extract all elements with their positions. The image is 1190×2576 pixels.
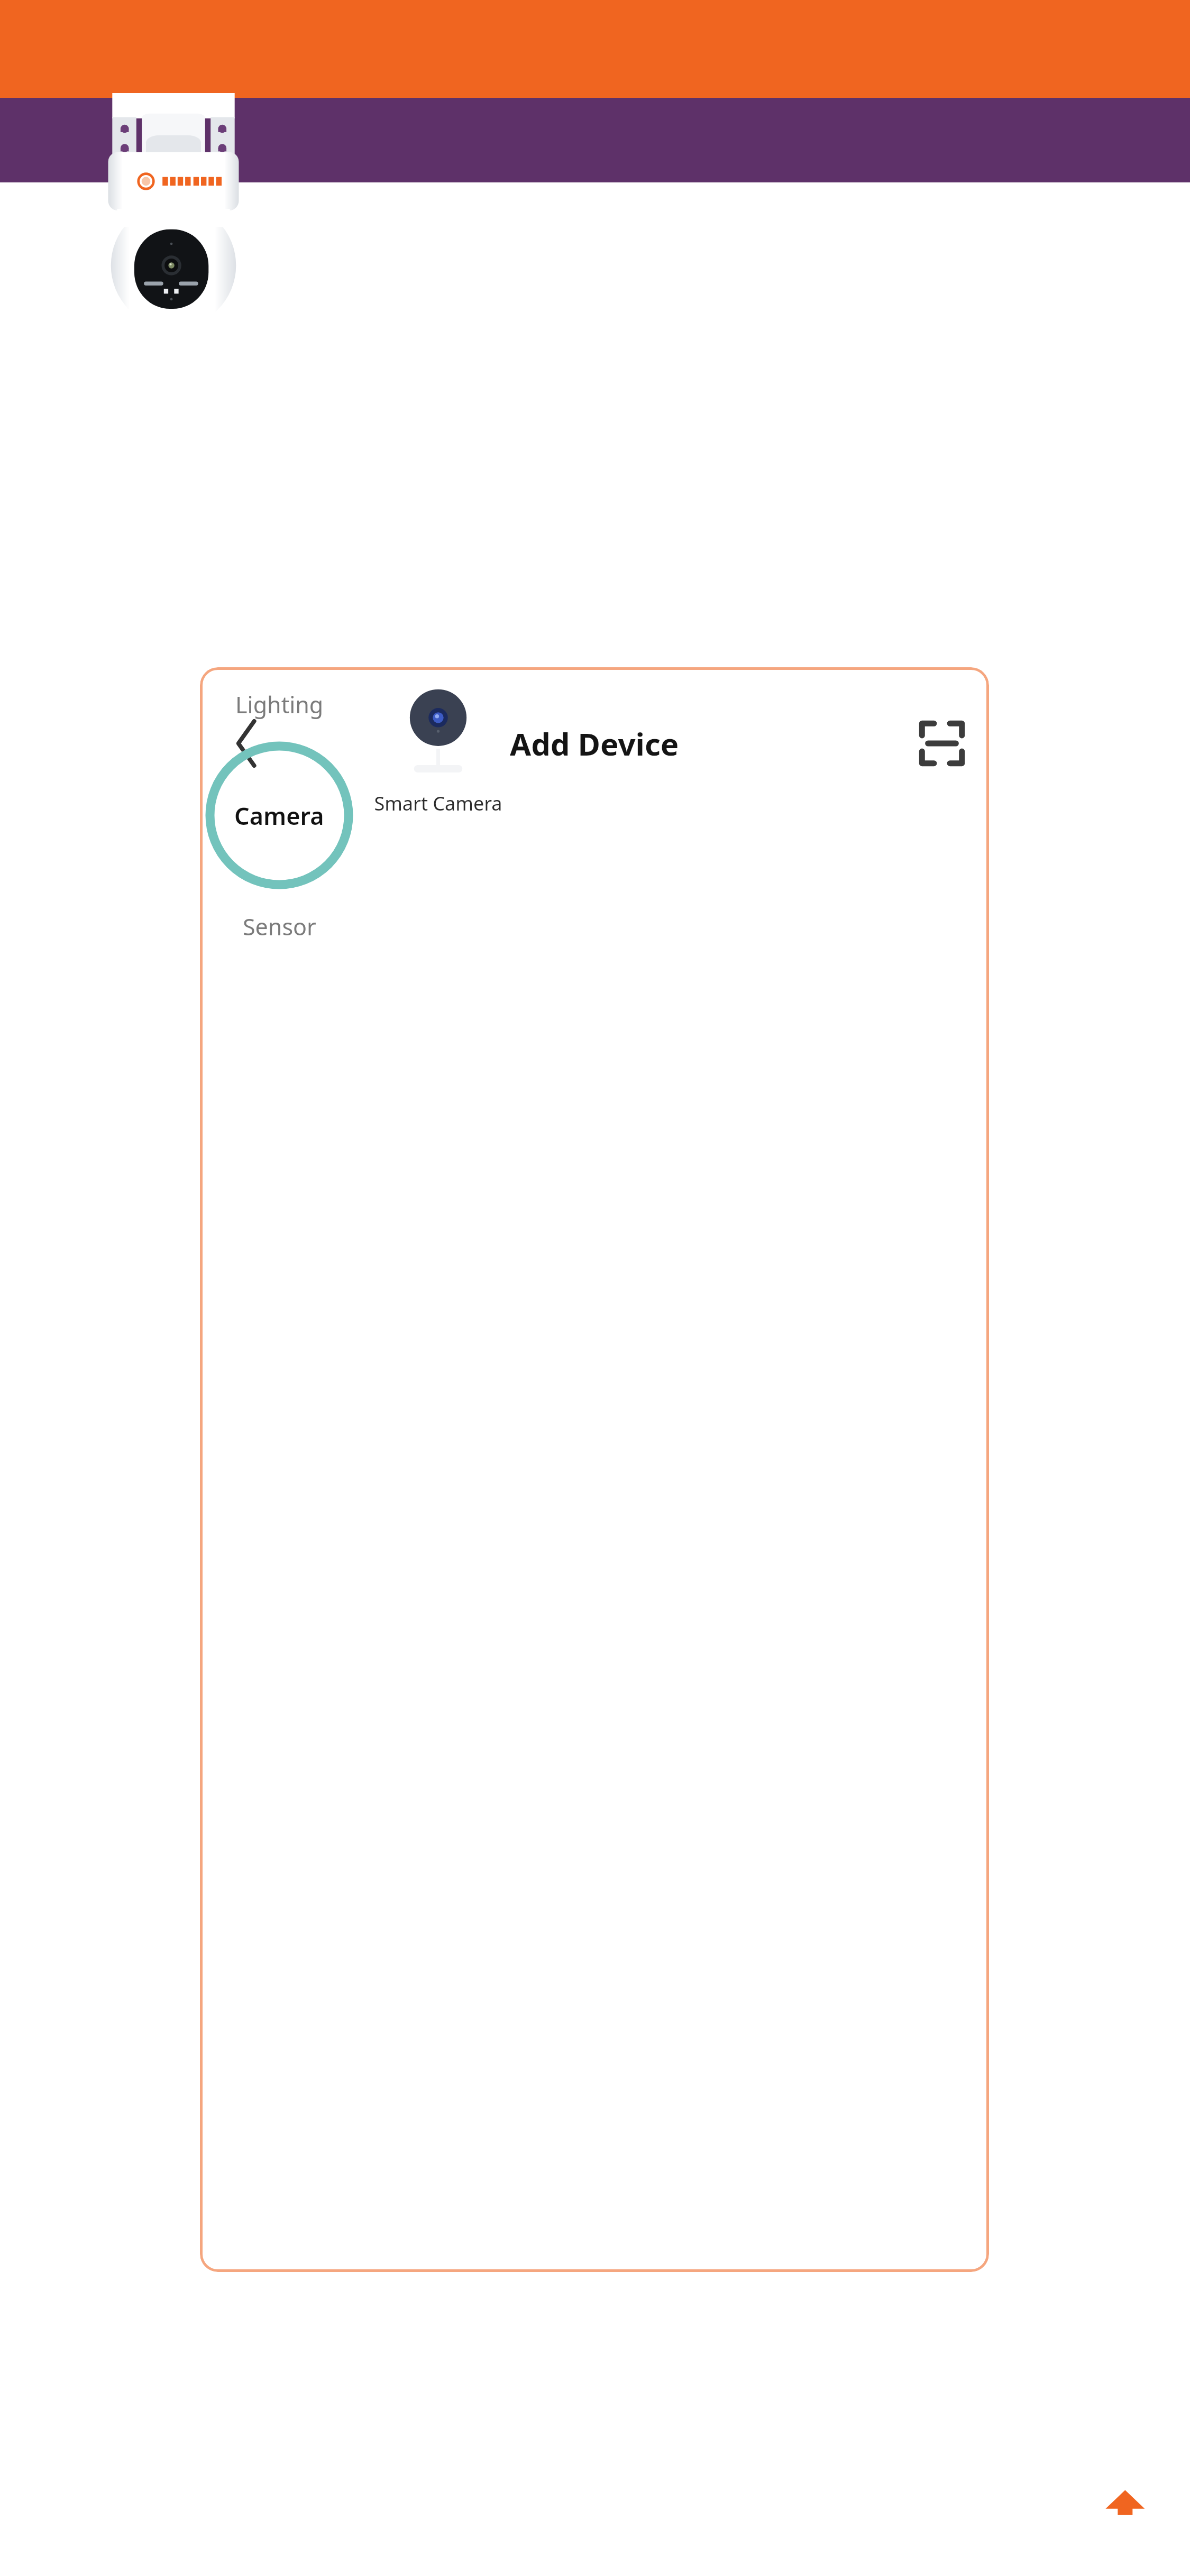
button[interactable]: Camera — [200, 741, 359, 889]
button[interactable]: Sensor — [200, 889, 359, 963]
staticText: Smart Camera — [374, 790, 502, 816]
staticText: Add Device — [510, 723, 679, 765]
button[interactable]: Scroll to top — [1094, 2472, 1153, 2532]
staticText: Sensor — [243, 911, 316, 942]
staticText: Camera — [234, 799, 324, 832]
button[interactable]: Back — [212, 709, 280, 778]
button[interactable]: Lighting — [200, 667, 359, 741]
staticText: Lighting — [235, 689, 324, 720]
button[interactable]: Smart Camera — [359, 680, 517, 816]
button[interactable]: Scan QR code — [908, 709, 976, 778]
